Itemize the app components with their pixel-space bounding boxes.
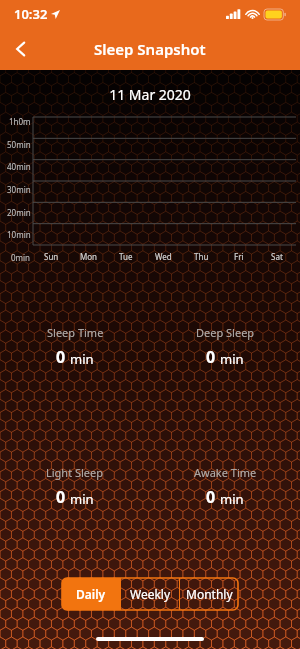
staticText: Sleep Snapshot	[94, 39, 206, 59]
staticText: 0min	[11, 252, 31, 263]
staticText: 50min	[7, 139, 31, 150]
staticText: 0	[56, 346, 66, 368]
staticText: Sleep Time	[47, 325, 104, 340]
staticText: Wed	[155, 251, 172, 262]
staticText: 40min	[7, 161, 31, 172]
staticText: 10:32	[14, 5, 48, 23]
staticText: 0	[206, 346, 216, 368]
button[interactable]: Daily	[62, 578, 120, 610]
staticText: Mon	[80, 251, 98, 262]
button[interactable]: Awake Time	[150, 465, 300, 508]
staticText: min	[220, 490, 244, 508]
staticText: 10min	[7, 229, 31, 240]
staticText: Sun	[44, 251, 59, 262]
staticText: min	[70, 350, 94, 368]
button[interactable]: Back	[0, 28, 42, 70]
staticText: Daily	[76, 586, 106, 602]
button[interactable]: Light Sleep	[0, 465, 150, 508]
staticText: 11 Mar 2020	[0, 85, 300, 104]
button[interactable]: Monthly	[180, 578, 238, 610]
staticText: Deep Sleep	[196, 325, 255, 340]
button[interactable]: Deep Sleep	[150, 325, 300, 368]
staticText: Tue	[119, 251, 133, 262]
staticText: Fri	[234, 251, 244, 262]
staticText: Awake Time	[194, 465, 257, 480]
staticText: Weekly	[130, 586, 171, 602]
staticText: min	[220, 350, 244, 368]
staticText: 20min	[7, 207, 31, 218]
staticText: min	[70, 490, 94, 508]
button[interactable]: Sleep Time	[0, 325, 150, 368]
staticText: 0	[206, 486, 216, 508]
staticText: Light Sleep	[46, 465, 104, 480]
staticText: 30min	[7, 184, 31, 195]
staticText: Thu	[194, 251, 209, 262]
staticText: 0	[56, 486, 66, 508]
staticText: 1h0m	[9, 116, 31, 127]
staticText: Monthly	[186, 586, 233, 602]
button[interactable]: Weekly	[121, 578, 179, 610]
staticText: Sat	[271, 251, 283, 262]
